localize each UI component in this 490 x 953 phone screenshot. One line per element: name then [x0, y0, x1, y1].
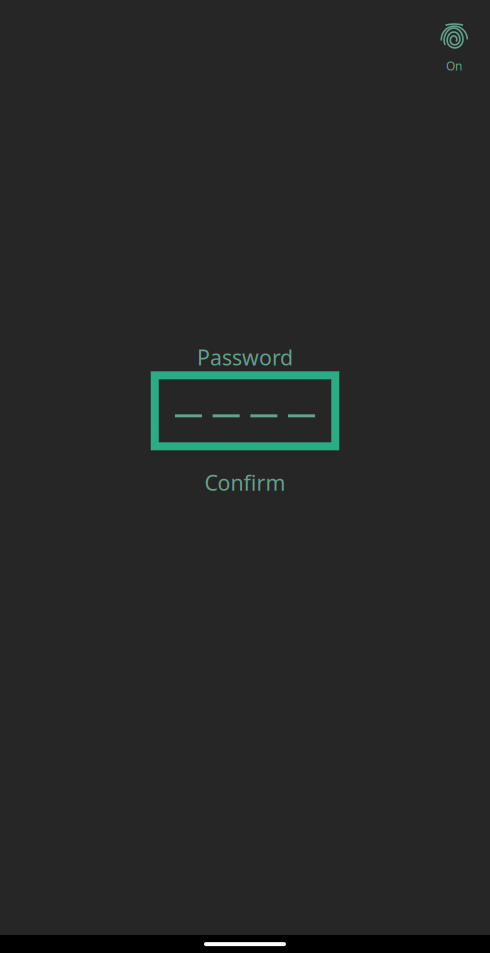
button[interactable]: Password [151, 371, 339, 450]
button[interactable]: Confirm [204, 468, 285, 497]
button[interactable]: Touch ID On [429, 0, 490, 84]
staticText: On [446, 58, 462, 74]
staticText: Confirm [204, 468, 285, 497]
staticText: Password [197, 343, 293, 371]
